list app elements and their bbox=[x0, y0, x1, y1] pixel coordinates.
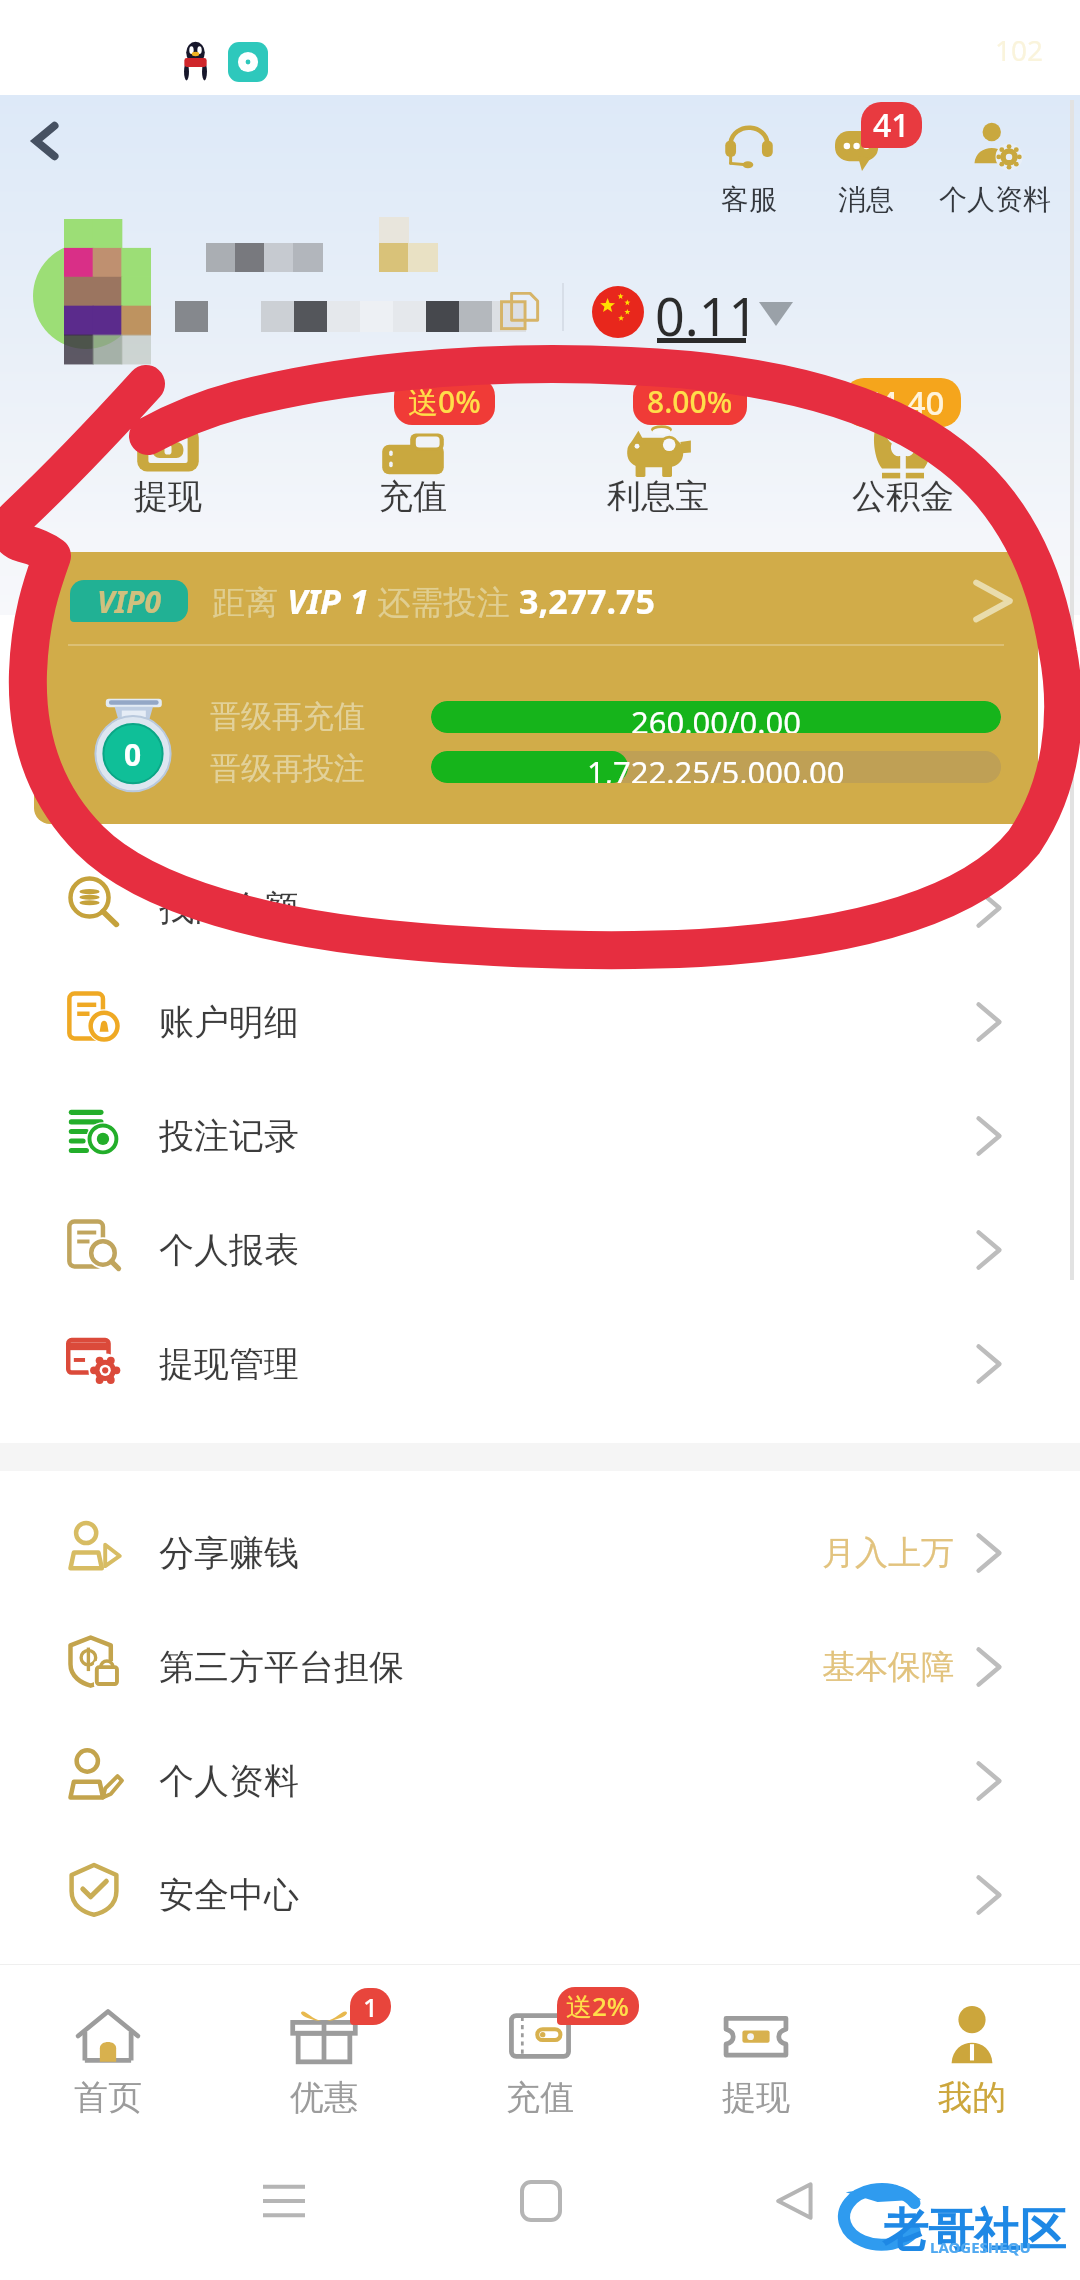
staticText: 提现 bbox=[722, 2076, 790, 2119]
staticText: 1 bbox=[363, 1989, 378, 2024]
button[interactable]: 我的 bbox=[864, 2002, 1080, 2119]
staticText: 充值 bbox=[506, 2076, 574, 2119]
button[interactable]: 客服 bbox=[692, 118, 806, 217]
staticText: 客服 bbox=[721, 182, 777, 217]
button[interactable]: 1 bbox=[216, 2002, 432, 2119]
staticText: 距离 bbox=[212, 579, 287, 624]
button[interactable]: 找回余额 bbox=[0, 851, 1080, 965]
button[interactable]: Back bbox=[14, 110, 76, 172]
staticText: 74.40 bbox=[860, 380, 945, 425]
button[interactable]: Back bbox=[758, 2165, 830, 2237]
button[interactable]: Recent apps bbox=[248, 2165, 320, 2237]
staticText: 月入上万 bbox=[822, 1532, 954, 1574]
staticText: VIP0 bbox=[97, 581, 162, 622]
staticText: 0.11 bbox=[655, 280, 759, 351]
staticText: VIP 1 bbox=[287, 578, 369, 624]
button[interactable]: 提现 bbox=[45, 400, 290, 518]
button[interactable]: 提现 bbox=[648, 2002, 864, 2119]
staticText: 260.00/0.00 bbox=[631, 701, 802, 733]
staticText: 还需投注 bbox=[369, 579, 519, 624]
staticText: 送2% bbox=[566, 1988, 630, 2024]
button[interactable]: 账户明细 bbox=[0, 965, 1080, 1079]
staticText: 基本保障 bbox=[822, 1646, 954, 1688]
button[interactable]: Copy ID bbox=[496, 287, 544, 335]
staticText: 分享赚钱 bbox=[159, 1531, 299, 1575]
staticText: 充值 bbox=[379, 475, 447, 518]
button[interactable]: Home bbox=[505, 2165, 577, 2237]
button[interactable]: 个人资料 bbox=[0, 1724, 1080, 1838]
staticText: 1,722.25/5,000.00 bbox=[587, 751, 845, 783]
staticText: 提现 bbox=[134, 475, 202, 518]
staticText: 我的 bbox=[938, 2076, 1006, 2119]
staticText: 提现管理 bbox=[159, 1342, 299, 1386]
staticText: 账户明细 bbox=[159, 1000, 299, 1044]
button[interactable]: 分享赚钱 bbox=[0, 1496, 1080, 1610]
button[interactable]: 第三方平台担保 bbox=[0, 1610, 1080, 1724]
staticText: LAOGESHEQU bbox=[930, 2237, 1031, 2257]
button[interactable]: 个人资料 bbox=[925, 118, 1065, 217]
button[interactable]: 送0% bbox=[290, 400, 535, 518]
staticText: 老哥社区 bbox=[882, 2202, 1066, 2260]
button[interactable]: 提现管理 bbox=[0, 1307, 1080, 1421]
staticText: 利息宝 bbox=[607, 475, 709, 518]
staticText: 公积金 bbox=[852, 475, 954, 518]
staticText: 102 bbox=[995, 31, 1044, 69]
staticText: 晋级再投注 bbox=[210, 749, 365, 788]
staticText: 消息 bbox=[838, 182, 894, 217]
staticText: 安全中心 bbox=[159, 1873, 299, 1917]
button[interactable]: 投注记录 bbox=[0, 1079, 1080, 1193]
staticText: 优惠 bbox=[290, 2076, 358, 2119]
staticText: 第三方平台担保 bbox=[159, 1645, 404, 1689]
button[interactable]: 送2% bbox=[432, 2002, 648, 2119]
button[interactable]: 首页 bbox=[0, 2002, 216, 2119]
staticText: 找回余额 bbox=[159, 886, 299, 930]
button[interactable]: 个人报表 bbox=[0, 1193, 1080, 1307]
staticText: 个人报表 bbox=[159, 1228, 299, 1272]
button[interactable]: 8.00% bbox=[535, 400, 780, 518]
button[interactable]: VIP0 bbox=[34, 552, 1038, 824]
button[interactable]: 41 bbox=[806, 118, 925, 217]
staticText: 晋级再充值 bbox=[210, 697, 365, 736]
staticText: 41 bbox=[873, 103, 910, 147]
staticText: 个人资料 bbox=[159, 1759, 299, 1803]
button[interactable]: 74.40 bbox=[780, 400, 1025, 518]
button[interactable]: 安全中心 bbox=[0, 1838, 1080, 1952]
staticText: 0 bbox=[124, 734, 142, 775]
staticText: 投注记录 bbox=[159, 1114, 299, 1158]
staticText: 个人资料 bbox=[939, 182, 1051, 217]
staticText: 3,277.75 bbox=[519, 578, 655, 624]
staticText: 8.00% bbox=[647, 381, 733, 422]
staticText: 送0% bbox=[408, 381, 481, 422]
staticText: 首页 bbox=[74, 2076, 142, 2119]
